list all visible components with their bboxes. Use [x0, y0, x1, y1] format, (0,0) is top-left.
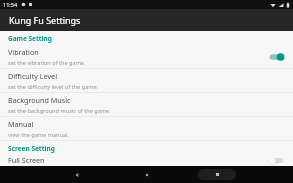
- button[interactable]: Toggle on: [268, 51, 285, 63]
- staticText: set the difficulty level of the game.: [8, 83, 99, 91]
- staticText: Game Setting: [8, 34, 52, 43]
- button[interactable]: Home: [112, 166, 182, 183]
- staticText: Screen Setting: [8, 144, 55, 153]
- staticText: Kung Fu Settings: [9, 14, 81, 26]
- button[interactable]: Back: [42, 166, 112, 183]
- button[interactable]: Toggle off: [268, 155, 285, 166]
- button[interactable]: Vibration: [0, 45, 293, 68]
- staticText: set the vibration of the game.: [8, 59, 86, 67]
- button[interactable]: Manual: [0, 117, 293, 140]
- staticText: Background Music: [8, 95, 71, 105]
- staticText: Manual: [8, 119, 34, 129]
- staticText: Difficulty Level: [8, 71, 58, 81]
- staticText: Full Screen: [8, 155, 45, 165]
- button[interactable]: Background Music: [0, 93, 293, 116]
- button[interactable]: Difficulty Level: [0, 69, 293, 92]
- staticText: Vibration: [8, 47, 39, 57]
- button[interactable]: Recent apps: [182, 166, 252, 183]
- button[interactable]: Full Screen: [0, 155, 293, 166]
- staticText: view the game manual.: [8, 131, 70, 139]
- staticText: set the background music of the game.: [8, 107, 111, 115]
- staticText: 11:54: [3, 1, 18, 8]
